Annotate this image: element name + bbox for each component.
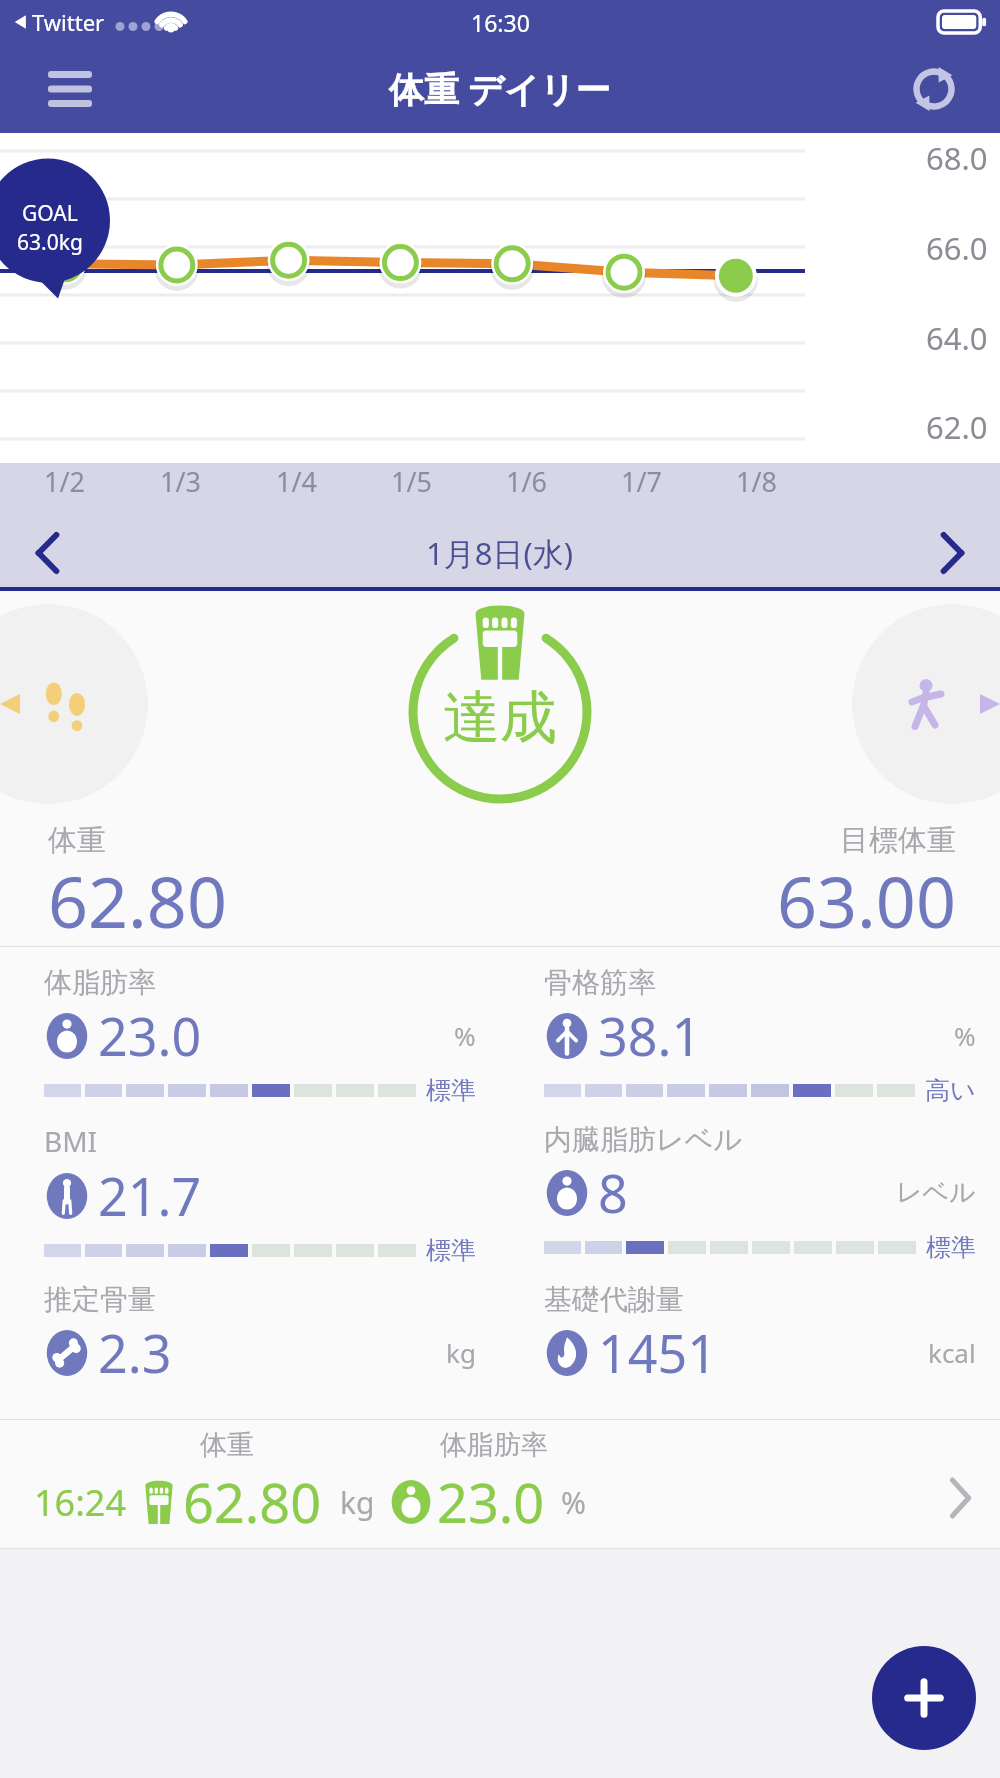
staticText: 56.0: [926, 676, 988, 718]
staticText: 62.0: [926, 406, 988, 448]
button[interactable]: 骨格筋率: [500, 957, 1000, 1114]
button[interactable]: Menu: [34, 53, 106, 125]
staticText: 1/4: [276, 463, 317, 500]
staticText: 23.0: [437, 1465, 545, 1539]
button[interactable]: Sync: [898, 53, 970, 125]
staticText: %: [454, 1018, 476, 1053]
staticText: 8: [598, 1157, 628, 1228]
button[interactable]: 体脂肪率: [0, 957, 500, 1114]
button[interactable]: 基礎代謝量: [500, 1274, 1000, 1413]
staticText: 体重: [48, 822, 106, 859]
staticText: %: [561, 1482, 586, 1523]
staticText: 体重: [200, 1428, 254, 1462]
staticText: 38.1: [598, 1000, 702, 1071]
staticText: 16:24: [34, 1478, 127, 1527]
staticText: 21.7: [98, 1160, 202, 1231]
button[interactable]: Steps: [0, 604, 148, 804]
staticText: GOAL: [22, 199, 78, 228]
button[interactable]: Activity: [852, 604, 1000, 804]
staticText: 1/5: [391, 463, 432, 500]
staticText: 1月8日(水): [426, 532, 574, 574]
staticText: 1/2: [44, 463, 85, 500]
staticText: 1/6: [506, 463, 547, 500]
staticText: 16:30: [471, 7, 530, 38]
staticText: 63.00: [777, 853, 956, 940]
staticText: 体脂肪率: [440, 1428, 548, 1462]
staticText: kg: [446, 1335, 476, 1370]
staticText: 高い: [925, 1075, 976, 1106]
staticText: 標準: [926, 1232, 976, 1263]
staticText: 基礎代謝量: [544, 1282, 684, 1317]
button[interactable]: BMI: [0, 1114, 500, 1274]
staticText: kcal: [928, 1335, 976, 1370]
staticText: レベル: [896, 1176, 976, 1209]
staticText: 達成: [443, 682, 557, 754]
staticText: 63.0kg: [17, 228, 83, 257]
staticText: kg: [340, 1482, 375, 1523]
staticText: 60.0: [926, 496, 988, 538]
button[interactable]: Next day: [904, 519, 1000, 587]
staticText: 推定骨量: [44, 1282, 156, 1317]
staticText: 62.80: [48, 853, 227, 940]
button[interactable]: 体重: [0, 1420, 1000, 1548]
staticText: 内臓脂肪レベル: [544, 1122, 742, 1157]
staticText: 1/3: [160, 463, 201, 500]
staticText: 目標体重: [840, 822, 956, 859]
staticText: 23.0: [98, 1000, 202, 1071]
button[interactable]: Previous day: [0, 519, 96, 587]
staticText: 体脂肪率: [44, 965, 156, 1000]
staticText: 1/7: [621, 463, 662, 500]
staticText: 標準: [426, 1235, 476, 1266]
staticText: 2.3: [98, 1317, 172, 1388]
staticText: 58.0: [926, 586, 988, 628]
staticText: BMI: [44, 1122, 98, 1160]
staticText: 標準: [426, 1075, 476, 1106]
button[interactable]: Add record: [872, 1646, 976, 1750]
staticText: 1451: [598, 1317, 717, 1388]
staticText: 64.0: [926, 317, 988, 359]
staticText: 62.80: [183, 1465, 322, 1539]
staticText: %: [954, 1018, 976, 1053]
staticText: 体重 デイリー: [389, 65, 611, 113]
staticText: 68.0: [926, 137, 988, 179]
button[interactable]: 推定骨量: [0, 1274, 500, 1413]
staticText: Twitter: [32, 7, 105, 37]
button[interactable]: Goal achieved: [408, 620, 592, 804]
staticText: 骨格筋率: [544, 965, 656, 1000]
staticText: 66.0: [926, 227, 988, 269]
button[interactable]: 内臓脂肪レベル: [500, 1114, 1000, 1271]
staticText: 1/8: [736, 463, 777, 500]
